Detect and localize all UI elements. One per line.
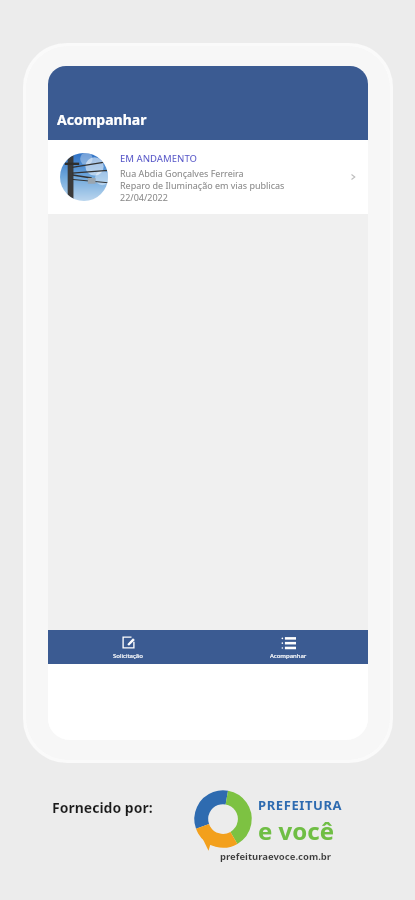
staticText: Solicitação: [113, 652, 143, 660]
staticText: PREFEITURA: [258, 796, 343, 814]
other: Solicitação: [121, 635, 136, 650]
staticText: EM ANDAMENTO: [120, 152, 198, 165]
staticText: 22/04/2022: [120, 191, 168, 203]
staticText: e você: [258, 814, 334, 847]
staticText: Rua Abdia Gonçalves Ferreira: [120, 167, 244, 179]
staticText: Acompanhar: [270, 652, 307, 660]
other: Acompanhar: [281, 635, 296, 650]
other: Abrir detalhes: [348, 172, 358, 182]
staticText: Acompanhar: [57, 110, 147, 129]
button[interactable]: Solicitação: [48, 630, 208, 664]
staticText: Reparo de Iluminação em vias publicas: [120, 179, 285, 191]
staticText: Fornecido por:: [52, 798, 153, 817]
button[interactable]: EM ANDAMENTO: [48, 140, 368, 214]
button[interactable]: Acompanhar: [208, 630, 368, 664]
staticText: prefeituraevoce.com.br: [220, 850, 332, 863]
